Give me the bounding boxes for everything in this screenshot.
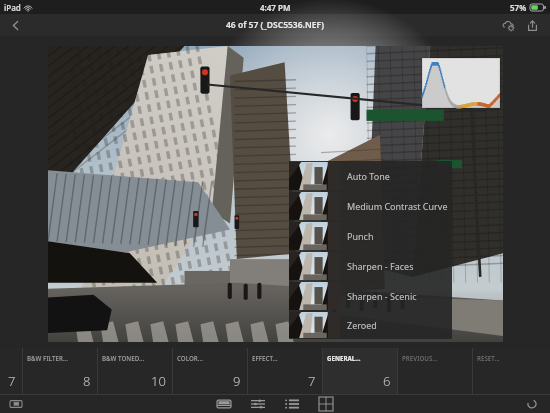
staticText: B&W TONED... bbox=[102, 354, 145, 362]
staticText: B&W FILTER... bbox=[27, 354, 69, 362]
button[interactable]: Grid view bbox=[315, 395, 337, 413]
button[interactable]: EFFECT... bbox=[247, 348, 322, 395]
button[interactable]: 7 bbox=[0, 348, 22, 395]
staticText: 8 bbox=[83, 372, 91, 390]
button[interactable]: B&W TONED... bbox=[97, 348, 172, 395]
staticText: 9 bbox=[233, 372, 241, 390]
button[interactable]: COLOR... bbox=[172, 348, 247, 395]
staticText: 6 bbox=[383, 372, 391, 390]
button[interactable]: Back bbox=[0, 14, 30, 36]
staticText: 46 of 57 (_DSC5536.NEF) bbox=[226, 19, 324, 31]
staticText: Medium Contrast Curve bbox=[347, 200, 448, 212]
staticText: Zeroed bbox=[347, 319, 377, 331]
staticText: RESET... bbox=[477, 354, 500, 362]
staticText: Sharpen - Scenic bbox=[347, 290, 417, 302]
staticText: 4:47 PM bbox=[260, 2, 291, 13]
button[interactable]: PREVIOUS... bbox=[397, 348, 472, 395]
button[interactable]: Adjust view bbox=[247, 395, 269, 413]
button[interactable]: Medium Contrast Curve bbox=[289, 191, 452, 221]
button[interactable]: Loupe view bbox=[213, 395, 235, 413]
button[interactable]: Panels bbox=[6, 395, 26, 413]
staticText: iPad bbox=[4, 2, 21, 13]
staticText: 10 bbox=[151, 372, 166, 390]
button[interactable]: Share bbox=[520, 14, 544, 36]
button[interactable]: B&W FILTER... bbox=[22, 348, 97, 395]
button[interactable]: Zeroed bbox=[289, 311, 452, 339]
staticText: Punch bbox=[347, 230, 374, 242]
staticText: GENERAL... bbox=[327, 354, 361, 362]
button[interactable]: Auto Tone bbox=[289, 161, 452, 191]
staticText: 7 bbox=[308, 372, 316, 390]
staticText: EFFECT... bbox=[252, 354, 278, 362]
staticText: PREVIOUS... bbox=[402, 354, 438, 362]
staticText: COLOR... bbox=[177, 354, 203, 362]
button[interactable]: List view bbox=[281, 395, 303, 413]
button[interactable]: Settings bbox=[496, 14, 520, 36]
staticText: Auto Tone bbox=[347, 170, 390, 182]
button[interactable]: Undo bbox=[522, 395, 542, 413]
staticText: 7 bbox=[8, 372, 16, 390]
staticText: Sharpen - Faces bbox=[347, 260, 414, 272]
button[interactable]: Sharpen - Faces bbox=[289, 251, 452, 281]
button[interactable]: Sharpen - Scenic bbox=[289, 281, 452, 311]
staticText: 57% bbox=[510, 2, 527, 13]
button[interactable]: Punch bbox=[289, 221, 452, 251]
button[interactable]: RESET... bbox=[472, 348, 547, 395]
button[interactable]: GENERAL... bbox=[322, 348, 397, 395]
